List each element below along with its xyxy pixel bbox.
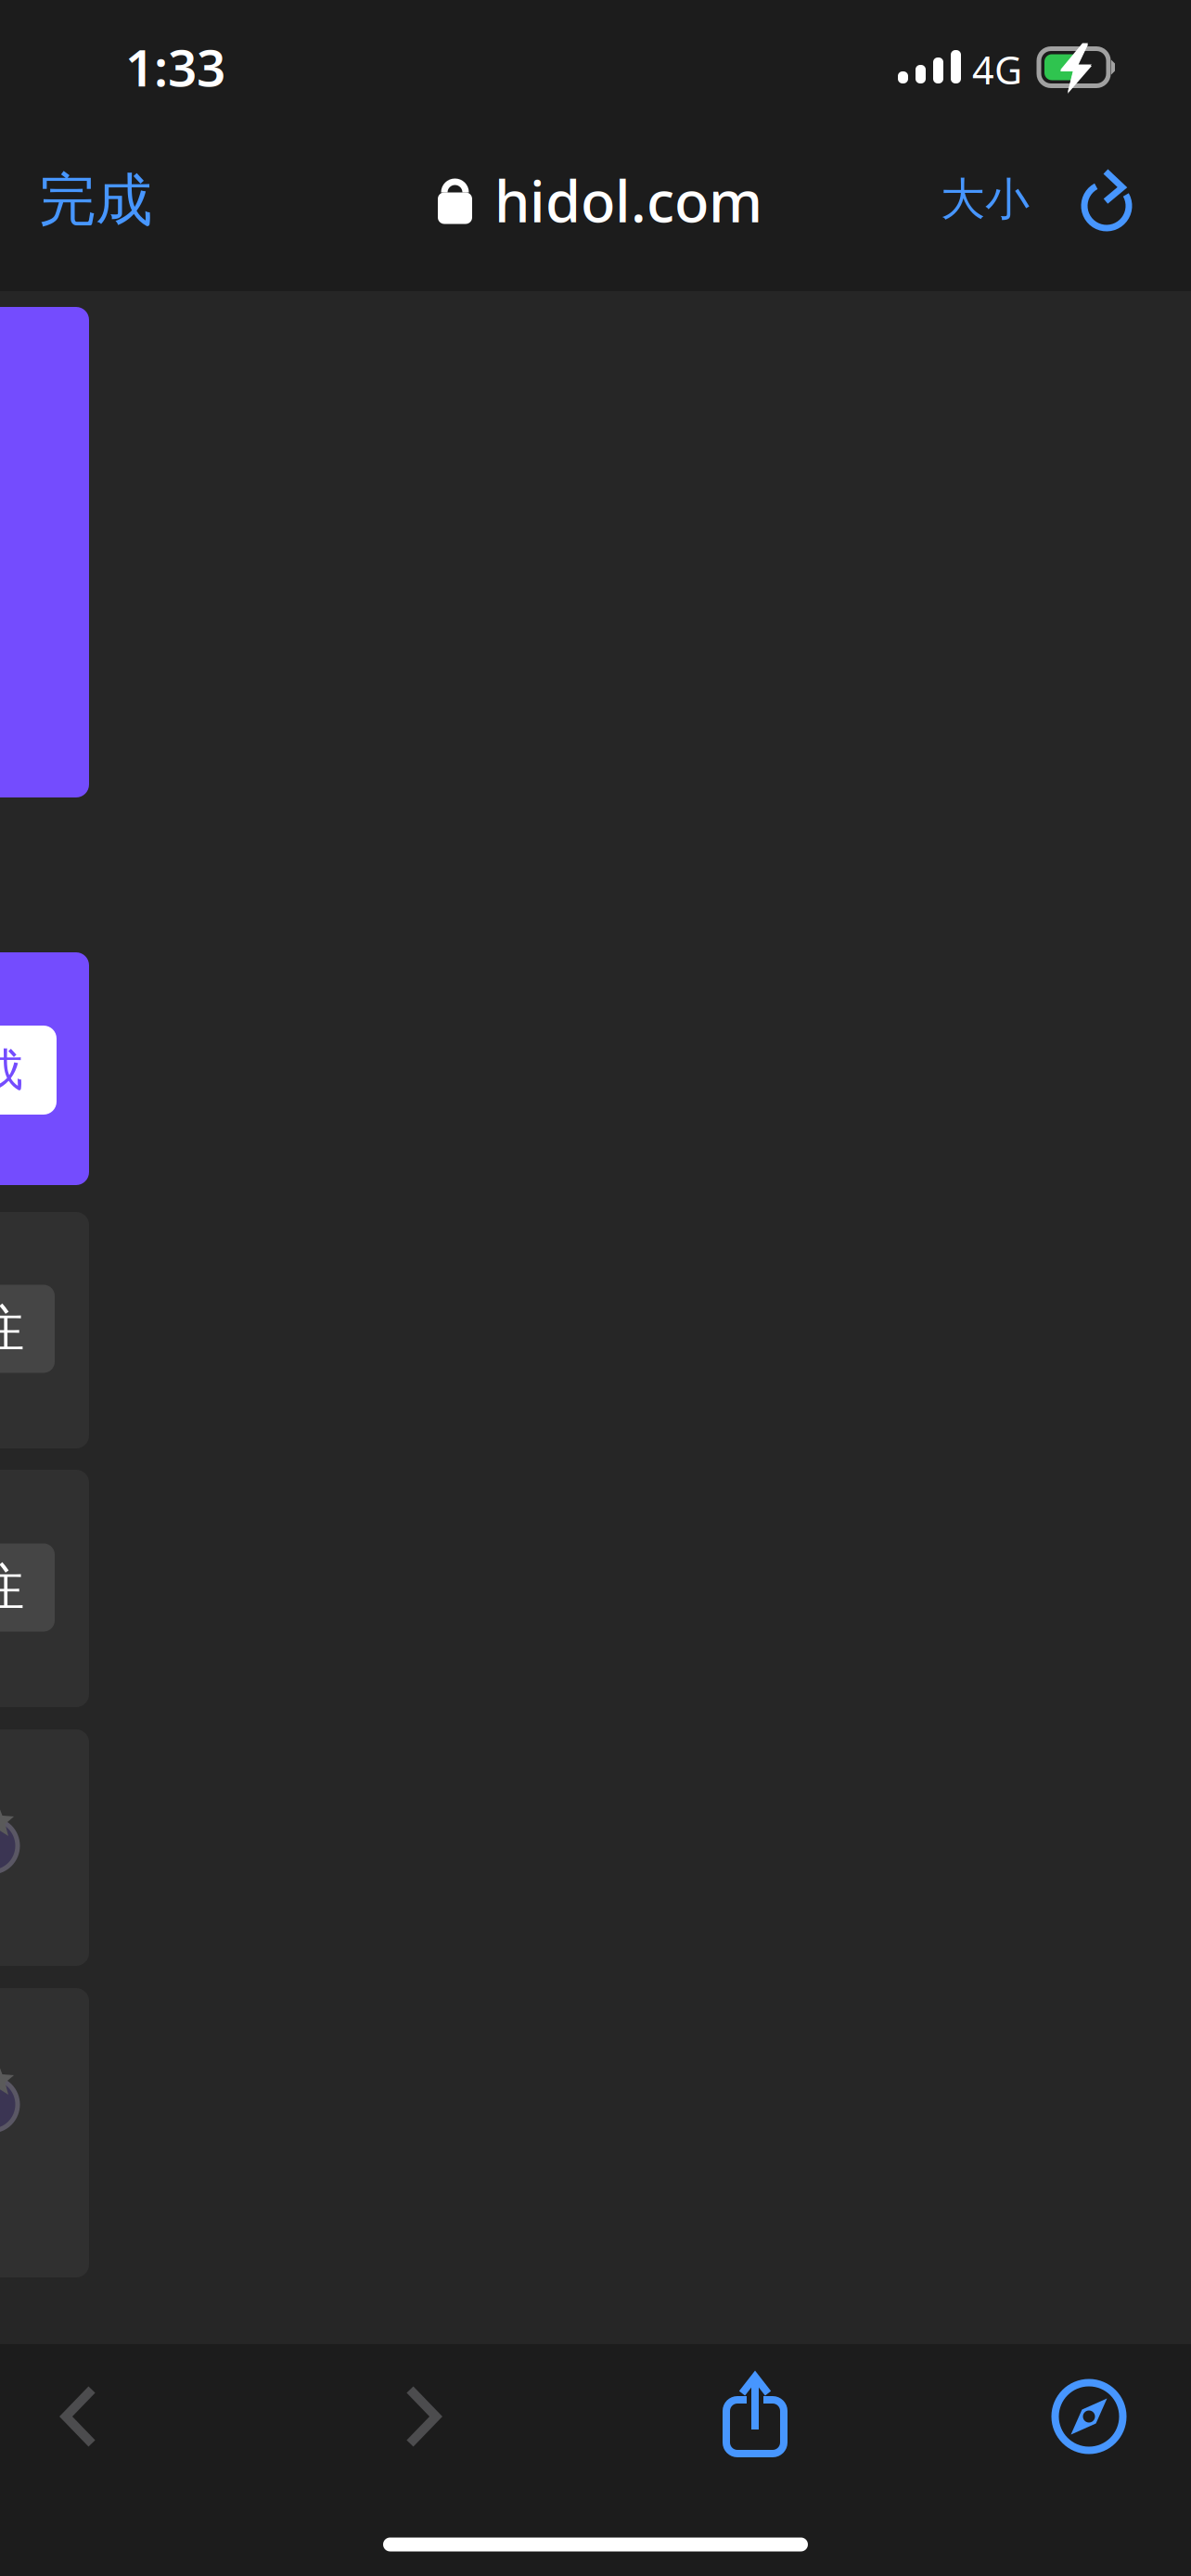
button[interactable]: 关注 xyxy=(0,1285,55,1373)
button[interactable]: Open in Safari xyxy=(1029,2361,1149,2472)
staticText: 完成 xyxy=(39,165,152,235)
staticText: 完成 xyxy=(0,1043,23,1097)
staticText: 1:33 xyxy=(125,33,225,100)
button[interactable]: 完成 xyxy=(3,152,188,249)
button[interactable]: Share xyxy=(696,2359,816,2470)
button[interactable]: Forward xyxy=(363,2361,483,2472)
button[interactable]: 关注 xyxy=(0,1543,55,1632)
staticText: 关注 xyxy=(0,1298,24,1359)
staticText: hidol.com xyxy=(494,163,762,238)
button[interactable]: Back xyxy=(19,2361,139,2472)
button[interactable]: Reload xyxy=(1062,152,1155,249)
button[interactable]: 完成 xyxy=(0,1026,57,1115)
staticText: 大小 xyxy=(941,172,1030,227)
button[interactable]: 大小 xyxy=(902,151,1069,248)
staticText: 4G xyxy=(972,44,1022,95)
staticText: 关注 xyxy=(0,1557,24,1618)
